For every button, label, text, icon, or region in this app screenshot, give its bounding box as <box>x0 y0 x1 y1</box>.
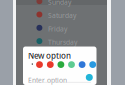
button[interactable]: Colour 1 <box>36 61 43 68</box>
button[interactable]: Selected colour <box>86 74 93 81</box>
staticText: Tuesday <box>48 64 73 73</box>
staticText: Friday <box>48 24 67 33</box>
button[interactable]: Monday <box>16 0 107 13</box>
button[interactable]: Sunday <box>16 0 107 13</box>
staticText: Sunday <box>48 0 71 7</box>
staticText: Enter option <box>28 76 67 85</box>
button[interactable]: Thursday <box>16 0 107 13</box>
button[interactable]: Saturday <box>16 0 107 13</box>
button[interactable]: Colour 6 <box>89 61 96 68</box>
button[interactable]: Colour 3 <box>57 61 64 68</box>
button[interactable]: Colour 2 <box>47 61 54 68</box>
button[interactable]: Colour 4 <box>68 61 75 68</box>
button[interactable]: Friday <box>16 0 107 13</box>
staticText: Wednesday <box>48 51 84 60</box>
button[interactable]: Wednesday <box>16 0 107 13</box>
staticText: New option <box>28 50 71 61</box>
staticText: Thursday <box>48 38 77 47</box>
staticText: Saturday <box>48 11 76 20</box>
button[interactable]: Colour 5 <box>79 61 85 68</box>
button[interactable]: Tuesday <box>16 0 107 13</box>
staticText: Monday <box>48 78 73 85</box>
